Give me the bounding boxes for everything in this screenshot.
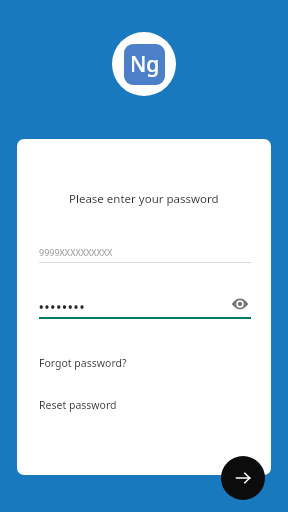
staticText: •••••••• <box>39 299 86 315</box>
staticText: Please enter your password <box>69 191 219 207</box>
button[interactable]: 9999XXXXXXXXXX <box>39 246 251 263</box>
button[interactable]: Continue <box>221 456 265 500</box>
staticText: Forgot password? <box>39 356 127 370</box>
button[interactable]: Show password <box>229 293 251 315</box>
staticText: Ng <box>130 50 160 79</box>
staticText: 9999XXXXXXXXXX <box>39 246 113 258</box>
staticText: Reset password <box>39 398 117 412</box>
button[interactable]: •••••••• <box>39 295 251 319</box>
button[interactable]: Reset password <box>39 398 117 412</box>
button[interactable]: Forgot password? <box>39 356 127 370</box>
